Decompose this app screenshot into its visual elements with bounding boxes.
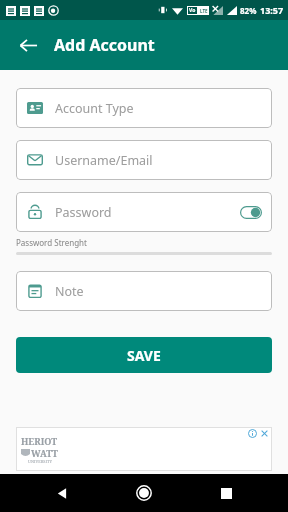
staticText: UNIVERSITY bbox=[28, 459, 52, 464]
staticText: Username/Email bbox=[55, 152, 153, 169]
staticText: LTE bbox=[200, 8, 208, 14]
staticText: Vo bbox=[189, 7, 196, 14]
staticText: WATT bbox=[31, 447, 58, 459]
button[interactable]: Advertisement bbox=[16, 427, 272, 471]
button[interactable]: Back bbox=[10, 27, 46, 63]
button[interactable]: SAVE bbox=[16, 337, 272, 373]
staticText: Note bbox=[55, 283, 84, 300]
staticText: 82% bbox=[240, 5, 257, 16]
button[interactable]: Username/Email bbox=[16, 140, 272, 180]
button[interactable]: Password bbox=[16, 192, 272, 232]
staticText: Password Strenght bbox=[16, 237, 87, 248]
staticText: SAVE bbox=[127, 346, 161, 365]
button[interactable]: Back bbox=[42, 474, 82, 512]
button[interactable]: Note bbox=[16, 271, 272, 311]
button[interactable]: Account Type bbox=[16, 88, 272, 128]
button[interactable]: Show password bbox=[240, 206, 262, 219]
staticText: Add Account bbox=[54, 34, 155, 56]
staticText: 13:57 bbox=[260, 4, 284, 16]
staticText: HERIOT bbox=[21, 435, 58, 447]
staticText: Account Type bbox=[55, 100, 134, 117]
button[interactable]: Recent apps bbox=[206, 474, 246, 512]
staticText: Password bbox=[55, 204, 112, 221]
button[interactable]: Home bbox=[124, 474, 164, 512]
